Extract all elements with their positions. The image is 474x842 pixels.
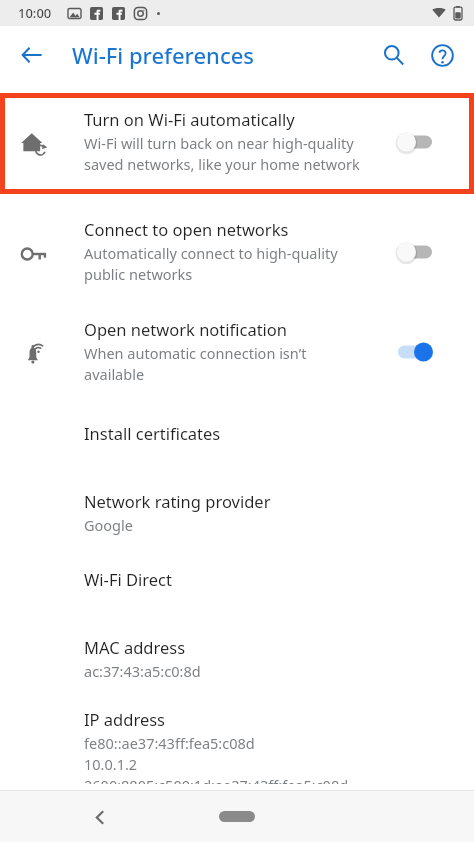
staticText: ac:37:43:a5:c0:8d xyxy=(84,661,201,681)
staticText: Wi-Fi will turn back on near high-qualit… xyxy=(84,133,354,153)
button[interactable]: Back xyxy=(8,31,56,79)
button[interactable]: Wi-Fi Direct xyxy=(0,550,474,622)
staticText: When automatic connection isn’t xyxy=(84,343,307,363)
staticText: Connect to open networks xyxy=(84,218,289,240)
button[interactable]: Install certificates xyxy=(0,404,474,476)
staticText: 10:00 xyxy=(18,4,52,22)
staticText: Turn on Wi-Fi automatically xyxy=(84,108,295,130)
staticText: Google xyxy=(84,515,133,535)
button[interactable]: Open network notification xyxy=(396,332,456,372)
button[interactable]: Home xyxy=(219,811,255,822)
button[interactable]: Help xyxy=(418,31,466,79)
staticText: IP address xyxy=(84,708,166,730)
staticText: 2600:8805:c500:1d:ae37:43ff:fea5:c08d xyxy=(84,775,349,784)
staticText: Automatically connect to high-quality xyxy=(84,243,338,263)
button[interactable]: Connect to open networks xyxy=(396,232,456,272)
button[interactable]: Turn on Wi-Fi automatically xyxy=(0,93,474,194)
button[interactable]: Turn on Wi-Fi automatically xyxy=(396,122,456,162)
staticText: 10.0.1.2 xyxy=(84,754,138,774)
button[interactable]: Open network notification xyxy=(0,304,474,404)
staticText: MAC address xyxy=(84,636,186,658)
button[interactable]: IP address xyxy=(0,694,474,784)
staticText: Wi-Fi preferences xyxy=(72,40,255,70)
staticText: Install certificates xyxy=(84,422,221,444)
staticText: Wi-Fi Direct xyxy=(84,568,172,590)
staticText: public networks xyxy=(84,264,193,284)
staticText: Open network notification xyxy=(84,318,288,340)
button[interactable]: Search xyxy=(370,31,418,79)
staticText: saved networks, like your home network xyxy=(84,154,360,174)
button[interactable]: Network rating provider xyxy=(0,476,474,550)
staticText: available xyxy=(84,364,145,384)
button[interactable]: Connect to open networks xyxy=(0,204,474,304)
button[interactable]: Back xyxy=(78,795,122,839)
staticText: fe80::ae37:43ff:fea5:c08d xyxy=(84,733,255,753)
button[interactable]: MAC address xyxy=(0,622,474,694)
staticText: Network rating provider xyxy=(84,490,271,512)
